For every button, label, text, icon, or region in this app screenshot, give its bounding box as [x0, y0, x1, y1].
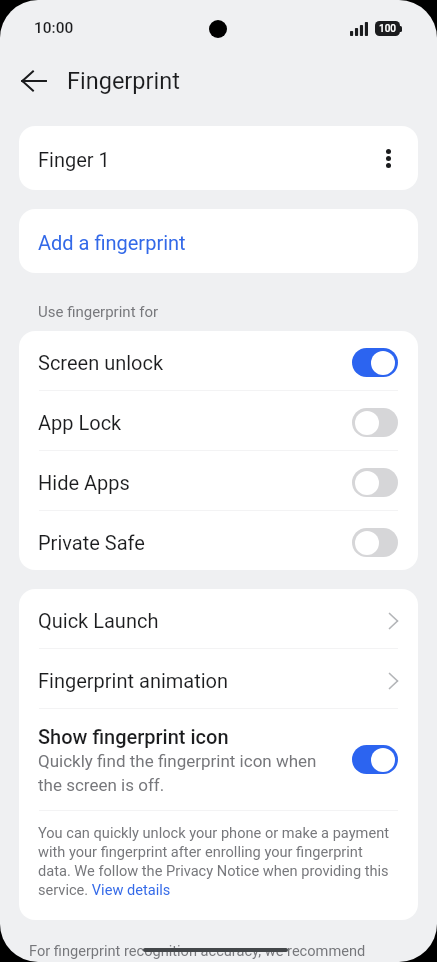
staticText: Quick Launch [38, 609, 159, 632]
button[interactable]: Add a fingerprint [19, 209, 418, 273]
staticText: Screen unlock [38, 351, 164, 374]
staticText: You can quickly unlock your phone or mak… [38, 824, 397, 899]
button[interactable]: Quick Launch [19, 589, 418, 648]
staticText: Hide Apps [38, 471, 130, 494]
button[interactable]: Hide Apps [19, 451, 418, 510]
staticText: Quickly find the fingerprint icon when t… [38, 751, 338, 795]
button[interactable]: More options [370, 140, 406, 176]
staticText: Fingerprint animation [38, 669, 229, 692]
staticText: Add a fingerprint [38, 231, 186, 254]
staticText: Fingerprint [67, 67, 180, 95]
button[interactable]: Show fingerprint icon [19, 709, 418, 810]
button[interactable]: Finger 1 [19, 126, 418, 190]
button[interactable]: App Lock [19, 391, 418, 450]
button[interactable]: Back [10, 57, 58, 105]
button[interactable]: Private Safe [19, 511, 418, 570]
staticText: For fingerprint recognition accuracy, we… [29, 942, 366, 959]
staticText: Use fingerprint for [38, 303, 159, 321]
staticText: App Lock [38, 411, 122, 434]
staticText: Finger 1 [38, 148, 110, 171]
button[interactable]: Fingerprint animation [19, 649, 418, 708]
button[interactable]: Screen unlock [19, 331, 418, 390]
staticText: 10:00 [34, 19, 74, 37]
staticText: Show fingerprint icon [38, 725, 229, 748]
staticText: Private Safe [38, 531, 145, 554]
staticText: 100 [379, 23, 397, 35]
